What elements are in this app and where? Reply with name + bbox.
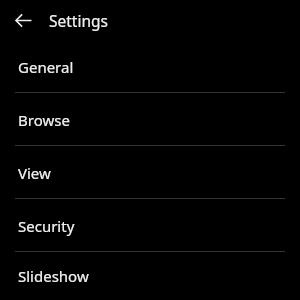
staticText: Security: [18, 216, 75, 236]
button[interactable]: Security: [0, 199, 300, 252]
staticText: General: [18, 57, 74, 77]
staticText: Settings: [49, 10, 108, 31]
button[interactable]: View: [0, 146, 300, 199]
button[interactable]: Browse: [0, 93, 300, 146]
button[interactable]: General: [0, 40, 300, 93]
staticText: View: [18, 163, 51, 183]
button[interactable]: Back: [7, 4, 39, 36]
button[interactable]: Slideshow: [0, 252, 300, 300]
staticText: Slideshow: [18, 266, 89, 286]
staticText: Browse: [18, 110, 70, 130]
